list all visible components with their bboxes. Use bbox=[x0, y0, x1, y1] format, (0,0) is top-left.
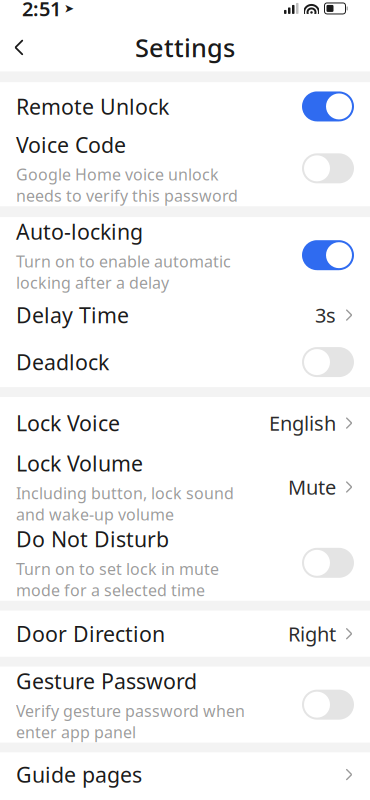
staticText: Settings bbox=[135, 31, 235, 64]
staticText: Lock Volume bbox=[16, 449, 143, 477]
staticText: Turn on to enable automatic locking afte… bbox=[16, 251, 231, 293]
button[interactable]: Gesture Password bbox=[0, 667, 370, 742]
staticText: Including button, lock sound and wake-up… bbox=[16, 482, 234, 525]
staticText: Verify gesture password when enter app p… bbox=[16, 700, 245, 743]
staticText: Google Home voice unlock needs to verify… bbox=[16, 164, 238, 206]
staticText: English bbox=[269, 410, 336, 436]
staticText: Mute bbox=[288, 474, 336, 500]
staticText: Voice Code bbox=[16, 130, 126, 159]
button[interactable]: Door Direction bbox=[0, 611, 370, 657]
button[interactable]: Guide pages bbox=[0, 753, 370, 797]
staticText: Door Direction bbox=[16, 620, 165, 648]
button[interactable]: Delay Time bbox=[0, 293, 370, 337]
staticText: Lock Voice bbox=[16, 409, 120, 437]
button[interactable]: Back bbox=[0, 27, 38, 67]
button[interactable]: Lock Volume bbox=[0, 449, 370, 525]
staticText: Remote Unlock bbox=[16, 92, 169, 121]
button[interactable]: Deadlock bbox=[0, 337, 370, 387]
staticText: 2:51 bbox=[22, 0, 61, 22]
staticText: 3s bbox=[315, 302, 336, 328]
staticText: Delay Time bbox=[16, 301, 129, 329]
staticText: Gesture Password bbox=[16, 667, 197, 695]
staticText: Deadlock bbox=[16, 348, 109, 376]
staticText: Right bbox=[288, 620, 336, 647]
staticText: Guide pages bbox=[16, 760, 142, 789]
staticText: Do Not Disturb bbox=[16, 525, 169, 553]
button[interactable]: Lock Voice bbox=[0, 397, 370, 449]
staticText: Auto-locking bbox=[16, 217, 143, 246]
staticText: Turn on to set lock in mute mode for a s… bbox=[16, 558, 219, 601]
button[interactable]: Voice Code bbox=[0, 130, 370, 206]
staticText: ➤ bbox=[64, 2, 74, 15]
button[interactable]: Auto-locking bbox=[0, 217, 370, 293]
button[interactable]: Remote Unlock bbox=[0, 82, 370, 130]
button[interactable]: Do Not Disturb bbox=[0, 525, 370, 601]
